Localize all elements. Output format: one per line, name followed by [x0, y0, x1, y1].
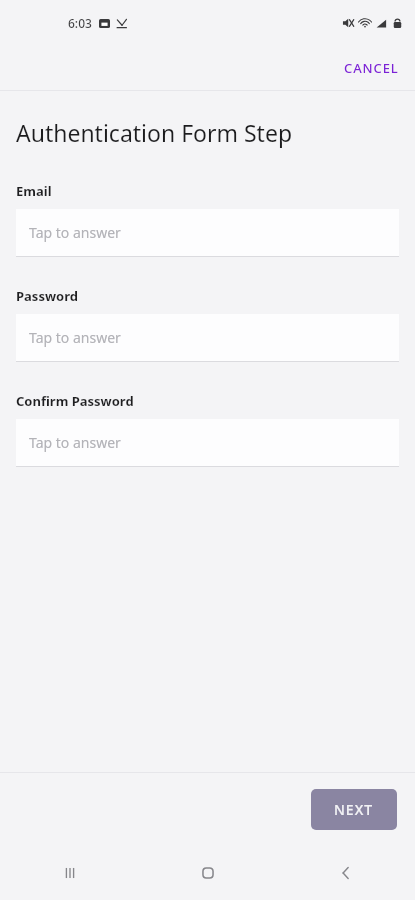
staticText: Tap to answer [29, 328, 121, 347]
staticText: NEXT [334, 800, 374, 819]
staticText: CANCEL [344, 59, 399, 77]
button[interactable]: Recent apps [0, 846, 139, 900]
staticText: Password [16, 287, 78, 305]
button[interactable]: Home [139, 846, 277, 900]
button[interactable]: Tap to answer [16, 209, 399, 257]
staticText: Tap to answer [29, 223, 121, 242]
button[interactable]: Tap to answer [16, 419, 399, 467]
staticText: Authentication Form Step [16, 117, 293, 148]
button[interactable]: CANCEL [334, 53, 409, 83]
button[interactable]: Back [277, 846, 415, 900]
staticText: Confirm Password [16, 392, 134, 410]
staticText: Tap to answer [29, 433, 121, 452]
staticText: 6:03 [68, 15, 92, 31]
button[interactable]: NEXT [311, 789, 397, 830]
button[interactable]: Tap to answer [16, 314, 399, 362]
staticText: Email [16, 182, 52, 200]
